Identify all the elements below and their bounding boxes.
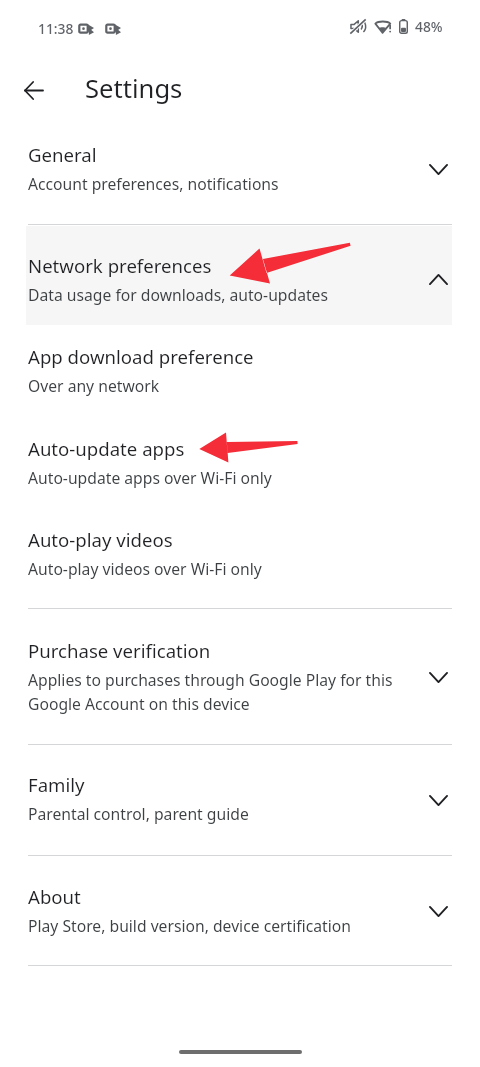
staticText: 11:38 <box>38 19 74 38</box>
staticText: Applies to purchases through Google Play… <box>28 669 393 714</box>
staticText: Auto-update apps <box>28 436 185 461</box>
button[interactable]: Purchase verification <box>0 638 480 724</box>
staticText: Data usage for downloads, auto-updates <box>28 284 328 305</box>
button[interactable]: General <box>0 142 480 204</box>
staticText: About <box>28 884 81 909</box>
button[interactable]: App download preference <box>0 344 480 406</box>
button[interactable]: Family <box>0 772 480 834</box>
staticText: Account preferences, notifications <box>28 173 279 194</box>
staticText: General <box>28 142 97 167</box>
staticText: Auto-play videos <box>28 527 173 552</box>
staticText: Parental control, parent guide <box>28 803 249 824</box>
button[interactable]: About <box>0 884 480 946</box>
staticText: Play Store, build version, device certif… <box>28 915 351 936</box>
staticText: Network preferences <box>28 253 212 278</box>
staticText: 48% <box>415 17 443 36</box>
button[interactable]: Auto-update apps <box>0 436 480 498</box>
staticText: Purchase verification <box>28 638 211 663</box>
staticText: Auto-play videos over Wi-Fi only <box>28 558 262 579</box>
staticText: Over any network <box>28 375 160 396</box>
staticText: Family <box>28 772 85 797</box>
staticText: App download preference <box>28 344 254 369</box>
staticText: Auto-update apps over Wi-Fi only <box>28 467 272 488</box>
button[interactable]: Network preferences <box>0 253 480 315</box>
button[interactable]: Back <box>12 68 56 112</box>
button[interactable]: Auto-play videos <box>0 527 480 589</box>
staticText: Settings <box>85 71 183 106</box>
